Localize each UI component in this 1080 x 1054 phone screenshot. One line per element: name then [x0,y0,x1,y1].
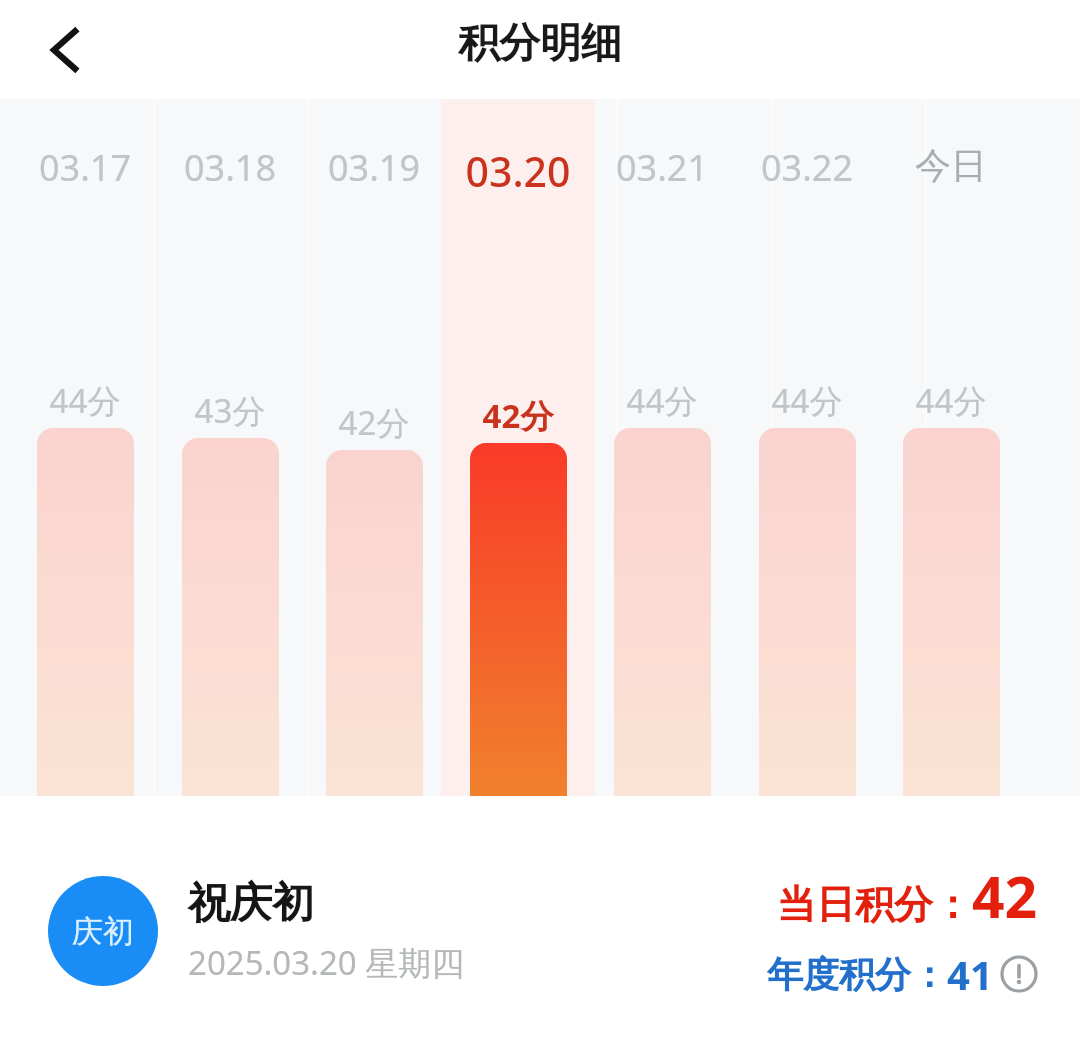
staticText: 42分 [294,400,454,445]
button[interactable] [759,428,856,796]
button[interactable] [614,428,711,796]
button[interactable]: 03.18 [140,143,320,192]
button[interactable]: 03.20 [428,143,608,199]
staticText: 42 [972,857,1038,935]
button[interactable] [182,438,279,796]
button[interactable]: 今日 [861,143,1041,188]
button[interactable] [903,428,1000,796]
staticText: 祝庆初 [188,877,314,930]
staticText: 43分 [150,388,310,433]
staticText: 庆初 [72,912,134,951]
button[interactable]: 03.19 [284,143,464,192]
staticText: 44分 [5,378,165,423]
staticText: 2025.03.20 星期四 [188,940,465,985]
button[interactable] [470,443,567,796]
other: Info [1000,955,1038,993]
button[interactable]: 庆初 [48,876,465,986]
button[interactable] [326,450,423,796]
button[interactable]: Back [20,5,110,95]
staticText: 42分 [438,393,598,438]
button[interactable]: 年度积分： [767,947,1038,1001]
staticText: 积分明细 [458,18,622,70]
button[interactable]: 03.22 [717,143,897,192]
staticText: 当日积分： [777,880,972,929]
button[interactable]: 03.21 [572,143,752,192]
staticText: 44分 [871,378,1031,423]
staticText: 年度积分： [767,952,947,997]
button[interactable] [37,428,134,796]
staticText: 44分 [582,378,742,423]
staticText: 44分 [727,378,887,423]
button[interactable]: 03.17 [0,143,175,192]
staticText: 41 [947,947,993,1001]
